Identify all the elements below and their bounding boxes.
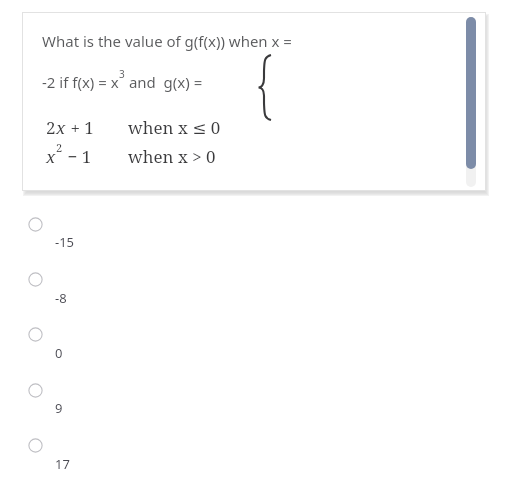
button[interactable]: Answer option 0 bbox=[20, 319, 490, 367]
button[interactable]: Answer option 17 bbox=[20, 430, 490, 478]
button[interactable]: Answer option 9 bbox=[20, 375, 490, 423]
button[interactable]: Answer option -15 bbox=[20, 209, 490, 257]
button[interactable]: Answer option -8 bbox=[20, 264, 490, 312]
button[interactable] bbox=[22, 12, 490, 196]
